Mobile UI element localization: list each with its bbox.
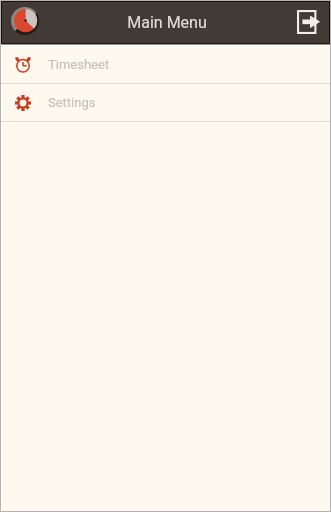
button[interactable]: Settings: [1, 84, 330, 121]
staticText: Timesheet: [48, 57, 110, 72]
staticText: Settings: [48, 95, 96, 110]
button[interactable]: App logo: [8, 4, 42, 38]
button[interactable]: Log out: [289, 2, 329, 41]
button[interactable]: Timesheet: [1, 46, 330, 83]
staticText: Main Menu: [127, 13, 207, 32]
